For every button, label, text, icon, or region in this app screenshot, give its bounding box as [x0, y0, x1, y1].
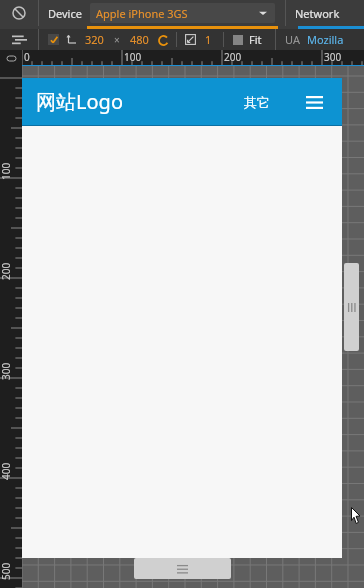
staticText: 网站Logo	[36, 88, 123, 115]
staticText: 200	[0, 262, 13, 280]
button[interactable]: 其它	[238, 86, 276, 118]
staticText: Mozilla	[307, 32, 344, 47]
button[interactable]: 网站Logo	[22, 78, 342, 125]
staticText: ×	[114, 33, 120, 47]
staticText: 480	[130, 32, 149, 47]
staticText: 200	[224, 50, 242, 64]
staticText: 0	[24, 50, 30, 64]
staticText: 其它	[244, 94, 270, 110]
button[interactable]: Swap dimensions	[156, 33, 170, 47]
staticText: Fit	[249, 32, 262, 47]
staticText: 100	[124, 50, 142, 64]
staticText: 500	[0, 562, 13, 580]
staticText: 320	[85, 32, 104, 47]
staticText: 100	[0, 162, 13, 180]
staticText: 1	[205, 32, 212, 47]
button[interactable]: Menu	[300, 88, 328, 116]
staticText: Device	[48, 6, 82, 21]
button[interactable]: Resize width	[344, 263, 359, 351]
button[interactable]: Apple iPhone 3GS	[90, 3, 275, 23]
staticText: Network	[295, 6, 340, 21]
button[interactable]	[48, 34, 59, 45]
staticText: Apple iPhone 3GS	[96, 6, 188, 21]
staticText: 300	[0, 362, 13, 380]
staticText: 300	[324, 50, 342, 64]
button[interactable]: More options	[0, 29, 38, 50]
staticText: 400	[0, 462, 13, 480]
button[interactable]: Resize height	[134, 558, 231, 579]
staticText: UA	[285, 32, 300, 47]
button[interactable]: Disable throttling	[0, 0, 38, 26]
